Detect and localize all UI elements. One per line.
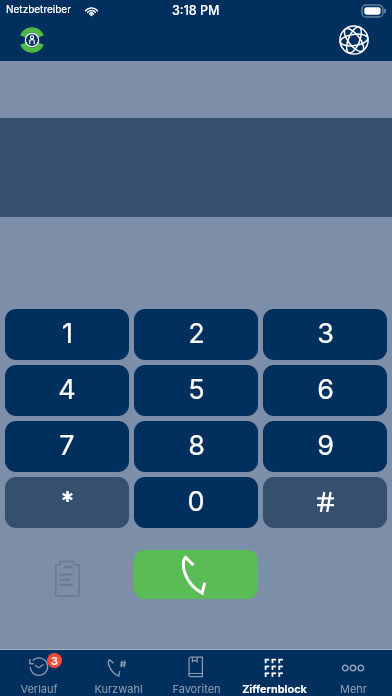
button[interactable]: Mehr <box>314 650 392 696</box>
staticText: 3 <box>51 654 58 667</box>
button[interactable]: 5 <box>134 365 258 416</box>
button[interactable]: 2 <box>134 309 258 360</box>
staticText: 8 <box>188 429 205 462</box>
staticText: 0 <box>187 485 205 518</box>
staticText: 7 <box>59 429 75 462</box>
button[interactable]: Kurzwahl <box>79 650 157 696</box>
staticText: Favoriten <box>172 682 221 695</box>
staticText: 1 <box>62 317 73 350</box>
button[interactable]: Notes <box>55 561 80 596</box>
button[interactable]: 3 <box>263 309 387 360</box>
button[interactable]: 9 <box>263 421 387 472</box>
button[interactable]: 3 <box>0 650 78 696</box>
staticText: 3 <box>317 317 334 350</box>
button[interactable]: Network <box>339 25 369 55</box>
button[interactable]: Call <box>134 550 258 599</box>
staticText: 3:18 PM <box>172 3 220 18</box>
staticText: 6 <box>317 373 334 406</box>
button[interactable] <box>263 477 387 528</box>
staticText: Ziffernblock <box>242 682 307 695</box>
button[interactable]: Account <box>19 27 45 53</box>
staticText: 5 <box>188 373 205 406</box>
button[interactable] <box>5 477 129 528</box>
button[interactable]: 8 <box>134 421 258 472</box>
button[interactable]: 7 <box>5 421 129 472</box>
staticText: Mehr <box>340 682 367 695</box>
button[interactable]: 4 <box>5 365 129 416</box>
button[interactable]: 1 <box>5 309 129 360</box>
staticText: 2 <box>188 317 205 350</box>
button[interactable]: Favoriten <box>157 650 235 696</box>
button[interactable]: 6 <box>263 365 387 416</box>
button[interactable]: 0 <box>134 477 258 528</box>
staticText: Kurzwahl <box>94 682 143 695</box>
button[interactable]: Ziffernblock <box>235 650 313 696</box>
staticText: 4 <box>58 373 76 406</box>
staticText: Verlauf <box>20 682 58 695</box>
staticText: 9 <box>317 429 334 462</box>
staticText: Netzbetreiber <box>6 3 71 15</box>
